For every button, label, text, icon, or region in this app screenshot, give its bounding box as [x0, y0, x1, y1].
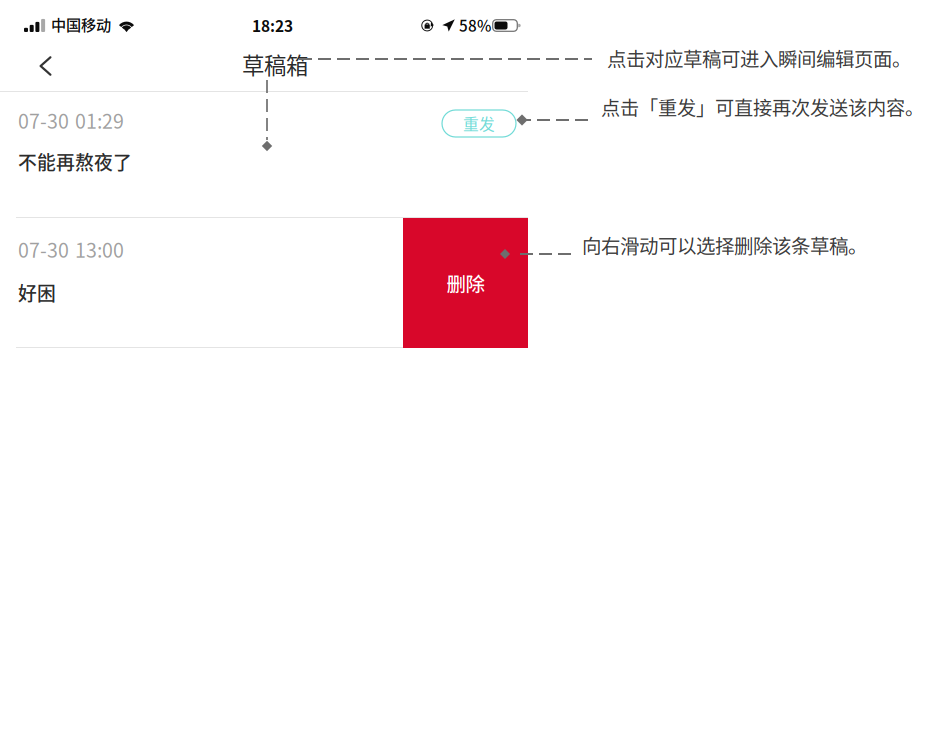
- staticText: 点击「重发」可直接再次发送该内容。: [601, 93, 924, 121]
- staticText: 不能再熬夜了: [18, 148, 132, 175]
- button[interactable]: Back: [26, 43, 72, 89]
- staticText: 07-30: [18, 235, 69, 263]
- staticText: 07-30: [18, 106, 69, 134]
- staticText: 草稿箱: [242, 48, 308, 80]
- staticText: 好困: [18, 279, 56, 306]
- staticText: 向右滑动可以选择删除该条草稿。: [582, 231, 867, 259]
- staticText: 18:23: [252, 14, 293, 36]
- staticText: 13:00: [75, 235, 124, 263]
- button[interactable]: 删除: [403, 218, 528, 348]
- staticText: 01:29: [75, 106, 124, 134]
- staticText: 重发: [463, 112, 495, 135]
- staticText: 删除: [446, 269, 484, 297]
- button[interactable]: 重发: [442, 110, 516, 137]
- staticText: 中国移动: [51, 13, 111, 35]
- button[interactable]: 07-30: [0, 92, 528, 217]
- staticText: 58%: [459, 14, 491, 36]
- button[interactable]: 07-30: [0, 218, 403, 348]
- staticText: 点击对应草稿可进入瞬间编辑页面。: [607, 44, 911, 72]
